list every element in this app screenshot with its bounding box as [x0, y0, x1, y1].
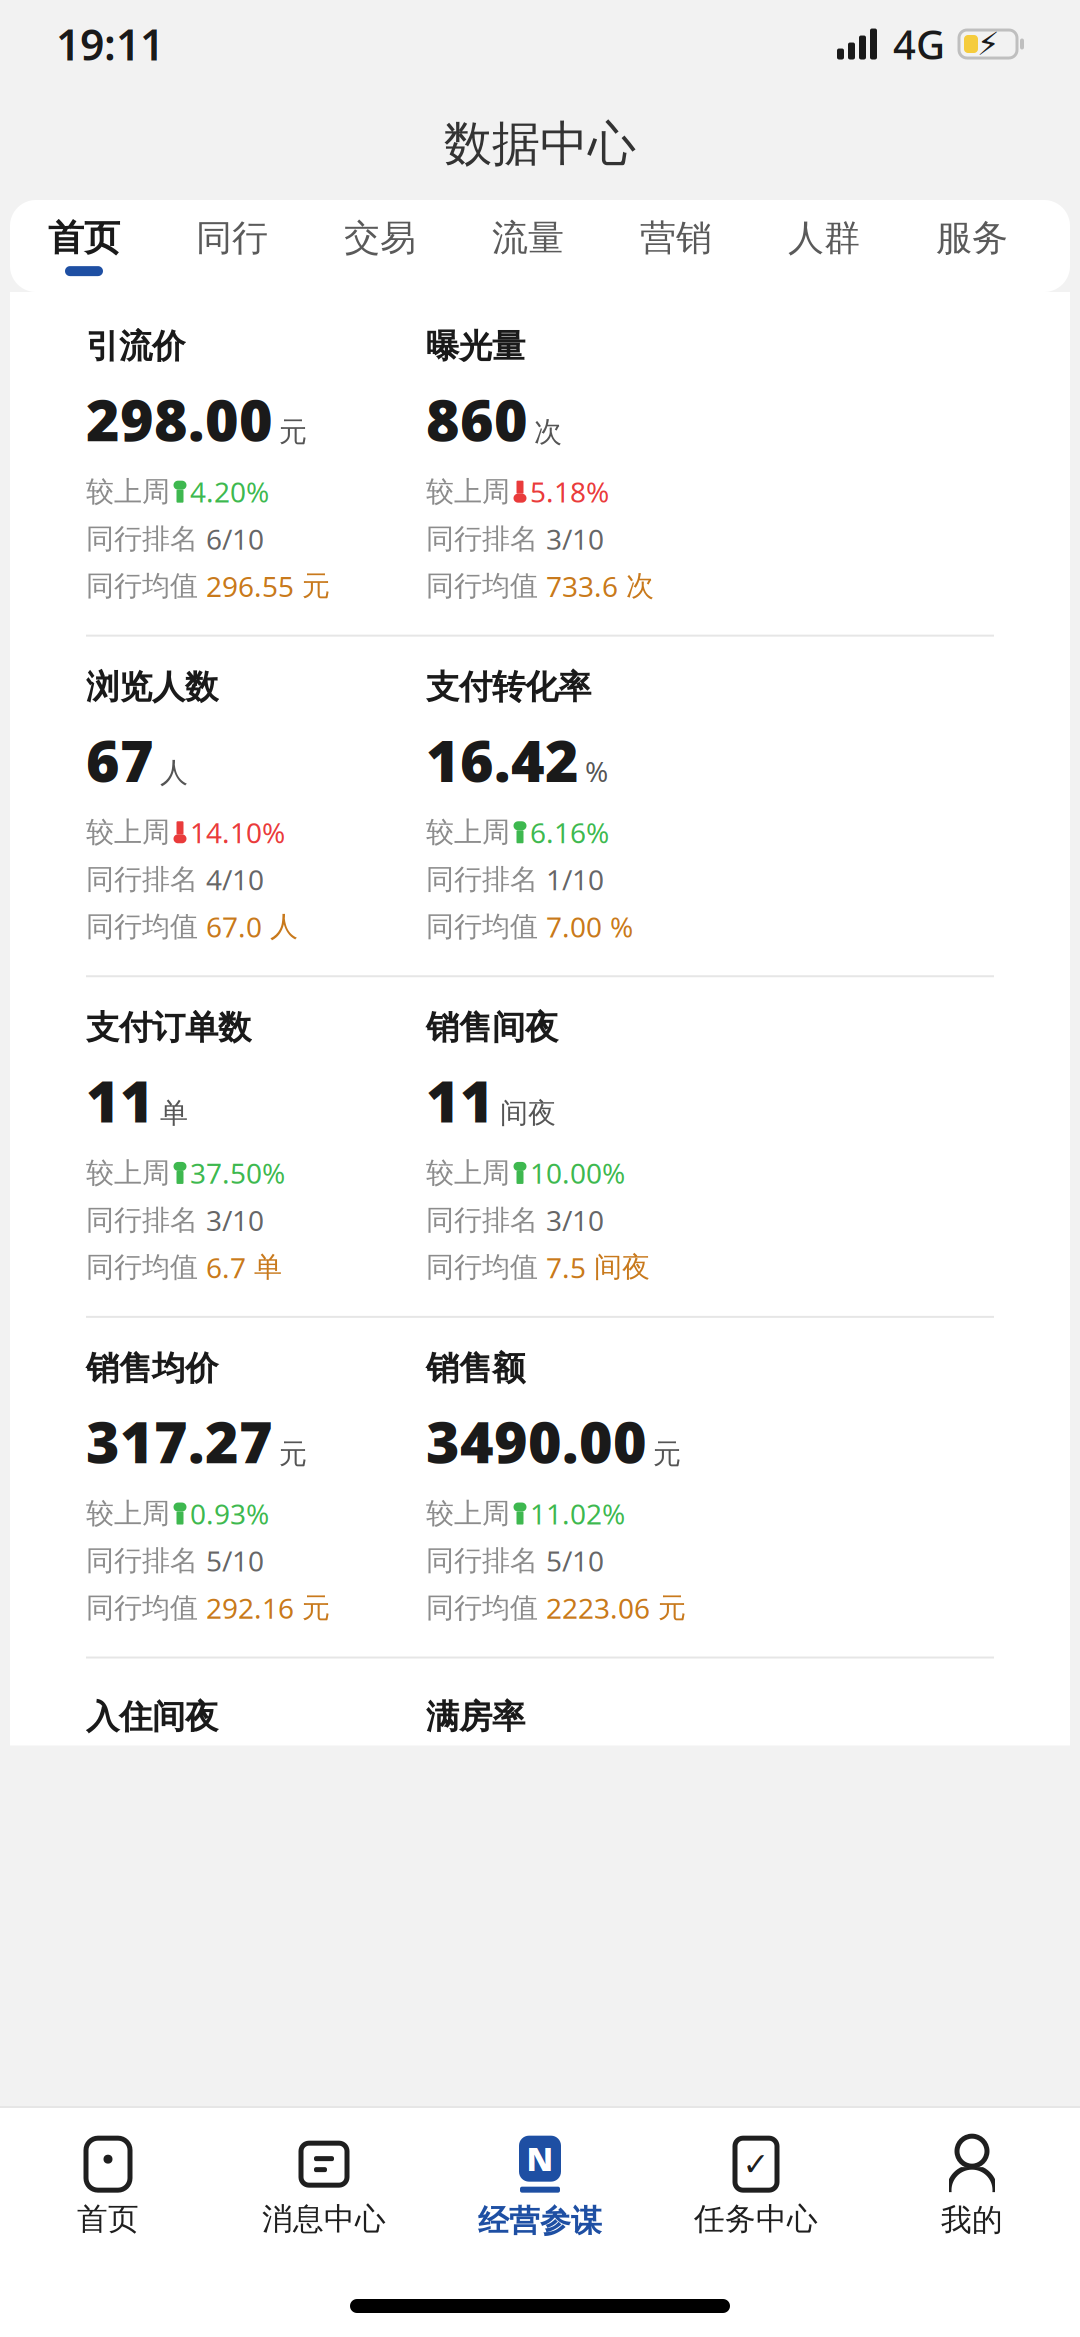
staticText: 同行均值 — [86, 909, 198, 944]
staticText: 支付订单数 — [86, 1007, 251, 1048]
staticText: 同行排名 — [86, 522, 198, 556]
staticText: 5/10 — [206, 1542, 264, 1579]
staticText: 销售额 — [426, 1348, 525, 1389]
staticText: 3490.00 — [426, 1403, 647, 1479]
staticText: 7.00 — [546, 908, 602, 945]
staticText: 11.02% — [530, 1495, 625, 1532]
staticText: 4/10 — [206, 861, 264, 898]
button[interactable]: 支付转化率 — [426, 667, 736, 945]
staticText: 292.16 — [206, 1589, 294, 1626]
staticText: 同行排名 — [426, 862, 538, 897]
staticText: 流量 — [492, 216, 564, 260]
button[interactable]: 引流价 — [86, 326, 396, 605]
staticText: 人 — [160, 755, 188, 790]
staticText: 间夜 — [500, 1096, 556, 1130]
staticText: 交易 — [344, 216, 416, 260]
staticText: 元 — [302, 569, 330, 603]
button[interactable]: 流量 — [454, 200, 602, 292]
staticText: 次 — [534, 415, 562, 449]
button[interactable]: 人群 — [750, 200, 898, 292]
staticText: 6.7 — [206, 1249, 246, 1286]
staticText: 元 — [302, 1591, 330, 1625]
staticText: 860 — [426, 381, 528, 457]
staticText: 单 — [254, 1250, 282, 1284]
staticText: 元 — [658, 1591, 686, 1625]
staticText: 11 — [426, 1062, 494, 1138]
staticText: 3/10 — [546, 1201, 604, 1239]
button[interactable]: ✓ — [648, 2122, 864, 2252]
staticText: 同行排名 — [86, 1543, 198, 1578]
staticText: 4G — [893, 17, 945, 70]
button[interactable]: 服务 — [898, 200, 1046, 292]
staticText: % — [610, 908, 633, 945]
staticText: 数据中心 — [444, 114, 636, 173]
staticText: 单 — [160, 1096, 188, 1130]
button[interactable]: 浏览人数 — [86, 667, 396, 945]
staticText: 较上周 — [86, 1496, 170, 1531]
staticText: 服务 — [936, 216, 1008, 260]
button[interactable]: 首页 — [10, 200, 158, 292]
staticText: 317.27 — [86, 1403, 273, 1479]
staticText: % — [585, 752, 608, 790]
staticText: 5/10 — [546, 1542, 604, 1579]
button[interactable]: 消息中心 — [216, 2122, 432, 2252]
staticText: 曝光量 — [426, 326, 525, 367]
staticText: 较上周 — [426, 474, 510, 509]
button[interactable]: 交易 — [306, 200, 454, 292]
staticText: 67 — [86, 722, 154, 798]
staticText: 任务中心 — [694, 2200, 818, 2238]
staticText: 同行均值 — [426, 909, 538, 944]
button[interactable]: 营销 — [602, 200, 750, 292]
staticText: 满房率 — [426, 1696, 525, 1737]
staticText: 我的 — [941, 2201, 1003, 2239]
staticText: ⚡︎ — [977, 26, 999, 62]
staticText: 6/10 — [206, 520, 264, 557]
staticText: 入住间夜 — [86, 1696, 218, 1737]
button[interactable]: 同行 — [158, 200, 306, 292]
button[interactable]: N — [432, 2122, 648, 2252]
staticText: 间夜 — [594, 1250, 650, 1284]
button[interactable]: 支付订单数 — [86, 1007, 396, 1286]
staticText: 销售均价 — [86, 1348, 218, 1389]
staticText: 首页 — [48, 216, 120, 260]
staticText: 人 — [270, 909, 298, 944]
staticText: 同行均值 — [86, 1250, 198, 1284]
staticText: 销售间夜 — [426, 1007, 558, 1048]
staticText: 浏览人数 — [86, 667, 218, 707]
button[interactable]: 首页 — [0, 2122, 216, 2252]
staticText: 同行排名 — [86, 1203, 198, 1237]
staticText: 营销 — [640, 216, 712, 260]
staticText: 同行排名 — [86, 862, 198, 897]
staticText: 6.16% — [530, 814, 609, 851]
staticText: 同行均值 — [86, 1591, 198, 1625]
staticText: 引流价 — [86, 326, 185, 367]
staticText: 较上周 — [426, 1496, 510, 1531]
staticText: 10.00% — [530, 1154, 625, 1191]
staticText: 同行均值 — [426, 1591, 538, 1625]
staticText: ✓ — [742, 2146, 769, 2182]
staticText: 同行 — [196, 216, 268, 260]
staticText: 同行排名 — [426, 1203, 538, 1237]
staticText: 首页 — [77, 2200, 139, 2238]
staticText: 较上周 — [86, 1156, 170, 1190]
staticText: 5.18% — [530, 473, 609, 510]
staticText: 较上周 — [86, 474, 170, 509]
button[interactable]: 销售均价 — [86, 1348, 396, 1626]
staticText: 较上周 — [86, 815, 170, 849]
staticText: 16.42 — [426, 722, 579, 798]
staticText: 11 — [86, 1062, 154, 1138]
button[interactable]: 曝光量 — [426, 326, 736, 605]
button[interactable]: 我的 — [864, 2122, 1080, 2252]
staticText: 同行均值 — [86, 569, 198, 603]
staticText: 元 — [653, 1437, 681, 1471]
staticText: 次 — [626, 569, 654, 603]
button[interactable]: 销售额 — [426, 1348, 736, 1626]
staticText: 同行排名 — [426, 1543, 538, 1578]
staticText: 733.6 — [546, 567, 618, 605]
staticText: 人群 — [788, 216, 860, 260]
staticText: 3/10 — [546, 520, 604, 557]
button[interactable]: 销售间夜 — [426, 1007, 736, 1286]
staticText: 元 — [279, 415, 307, 449]
staticText: 298.00 — [86, 381, 273, 457]
staticText: 同行均值 — [426, 1250, 538, 1284]
